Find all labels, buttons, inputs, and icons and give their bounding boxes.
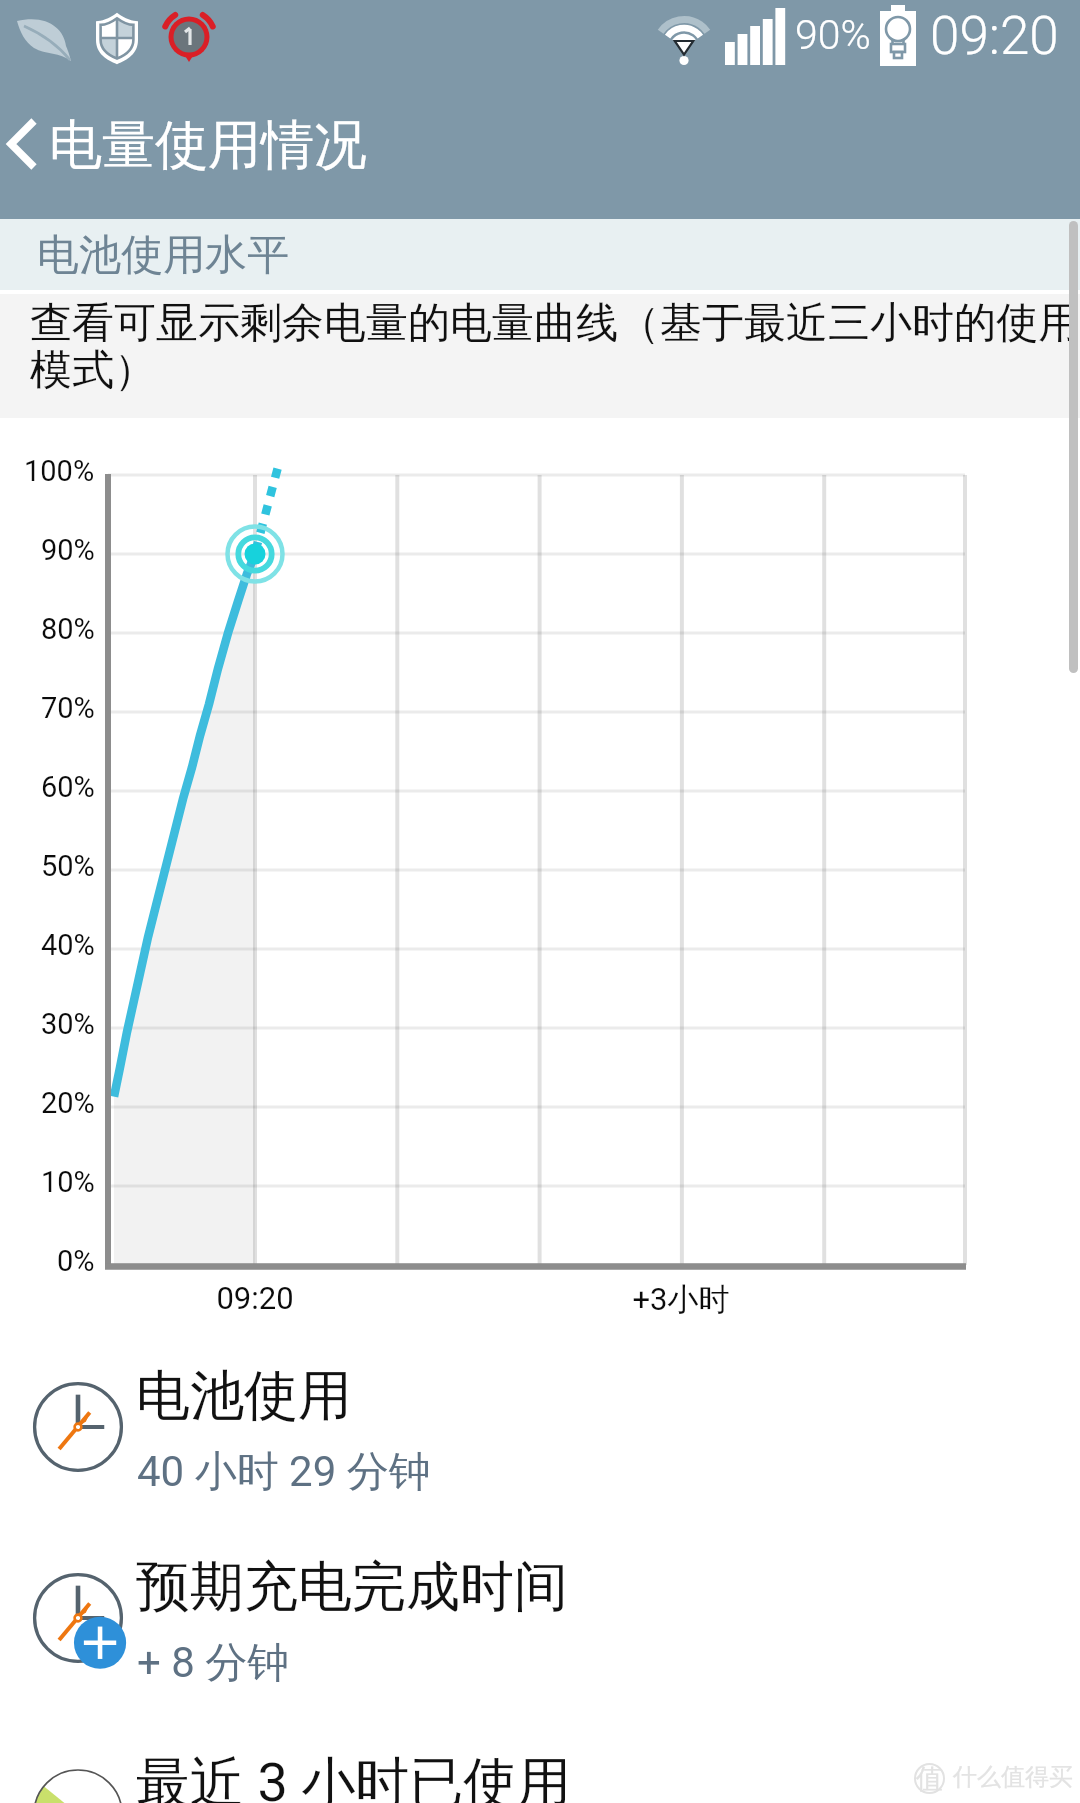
staticText: 50% [41, 849, 95, 883]
staticText: 预期充电完成时间 [136, 1553, 568, 1621]
staticText: 电池使用水平 [37, 229, 289, 282]
staticText: 90% [41, 533, 95, 567]
staticText: 电池使用 [136, 1362, 352, 1430]
staticText: 20% [41, 1086, 95, 1120]
staticText: 09:20 [930, 5, 1059, 67]
button[interactable]: 预期充电完成时间 [0, 1523, 1080, 1714]
button[interactable]: Back [0, 90, 56, 219]
staticText: 40% [41, 928, 95, 962]
staticText: 0% [57, 1244, 95, 1278]
staticText: 09:20 [216, 1280, 294, 1316]
staticText: + 8 分钟 [137, 1637, 290, 1690]
staticText: 40 小时 29 分钟 [137, 1446, 431, 1499]
staticText: 查看可显示剩余电量的电量曲线（基于最近三小时的使用模式） [30, 297, 1080, 397]
staticText: 什么值得买 [953, 1762, 1073, 1792]
staticText: 60% [41, 770, 95, 804]
button[interactable]: 电池使用 [0, 1332, 1080, 1523]
staticText: 10% [41, 1165, 95, 1199]
staticText: 电量使用情况 [49, 112, 367, 179]
button[interactable]: 最近 3 小时已使用 [0, 1719, 1080, 1803]
staticText: 值 [916, 1762, 943, 1796]
staticText: 80% [41, 612, 95, 646]
staticText: 90% [795, 11, 871, 59]
staticText: 100% [24, 454, 95, 488]
staticText: 70% [41, 691, 95, 725]
staticText: +3小时 [632, 1280, 730, 1319]
staticText: 30% [41, 1007, 95, 1041]
staticText: 最近 3 小时已使用 [136, 1749, 572, 1803]
